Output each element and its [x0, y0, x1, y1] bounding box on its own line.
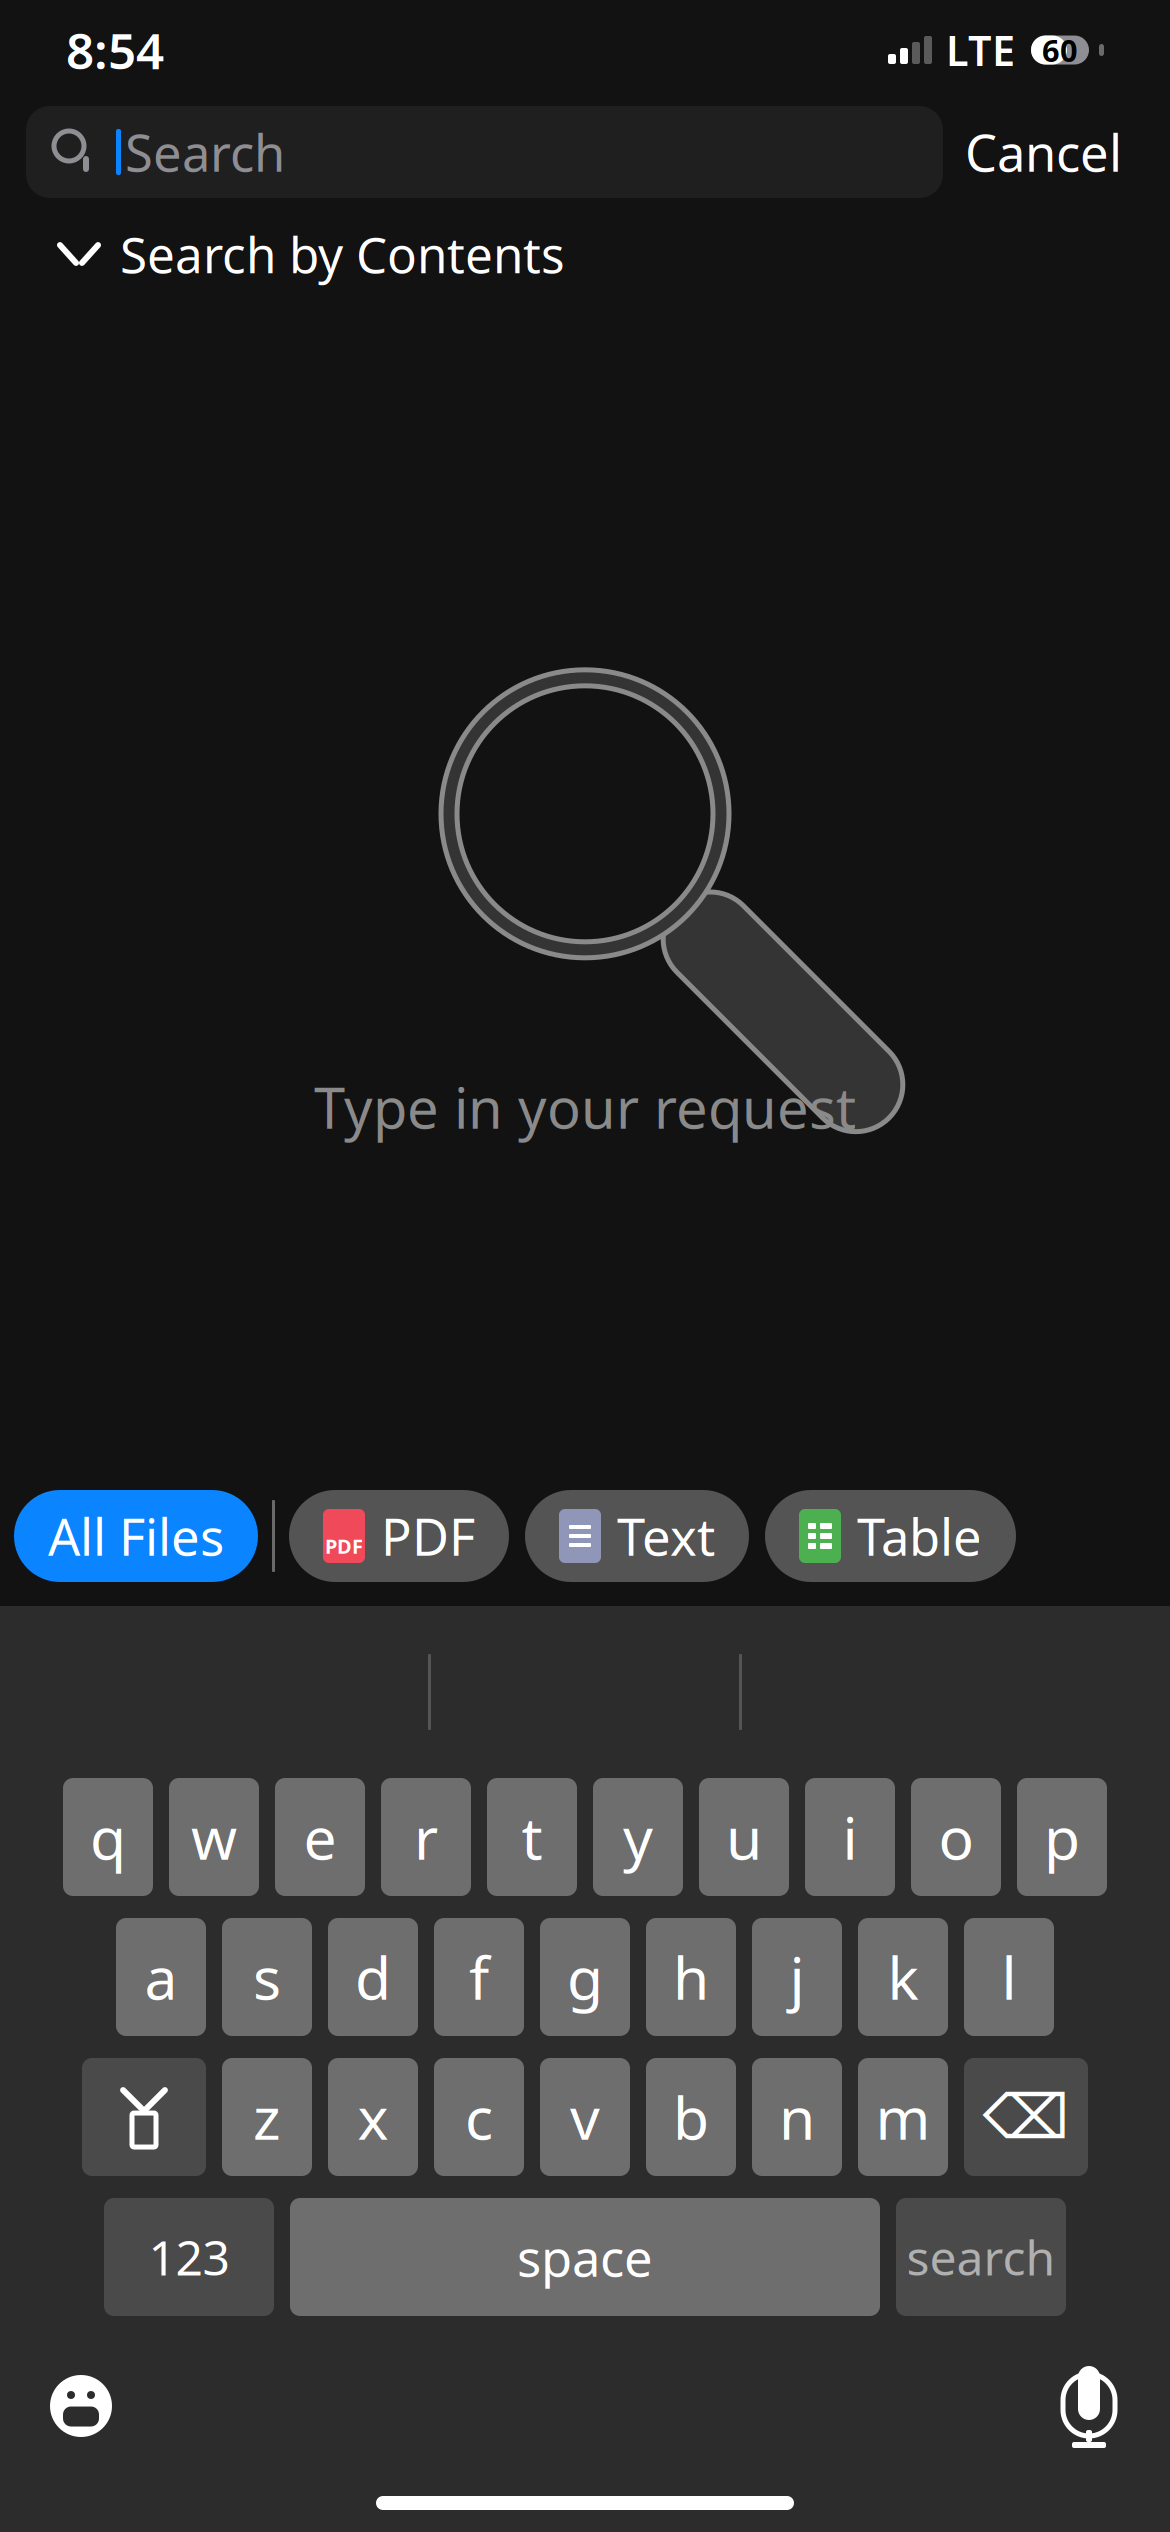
staticText: x — [357, 2078, 388, 2156]
staticText: a — [144, 1938, 177, 2016]
staticText: g — [567, 1938, 603, 2016]
staticText: PDF — [381, 1502, 475, 1570]
staticText: Text — [617, 1502, 715, 1570]
button[interactable]: y — [593, 1778, 683, 1896]
button[interactable]: All Files — [14, 1490, 258, 1582]
staticText: Search by Contents — [120, 221, 565, 287]
staticText: m — [875, 2078, 930, 2156]
button[interactable]: b — [646, 2058, 736, 2176]
staticText: i — [842, 1798, 857, 1876]
staticText: 60 — [1042, 30, 1078, 70]
button[interactable]: q — [63, 1778, 153, 1896]
staticText: Type in your request — [314, 1070, 856, 1144]
button[interactable]: Search by Contents — [0, 216, 1170, 292]
button[interactable]: u — [699, 1778, 789, 1896]
staticText: PDF — [325, 1533, 363, 1559]
button[interactable]: i — [805, 1778, 895, 1896]
button[interactable]: x — [328, 2058, 418, 2176]
staticText: 123 — [148, 2225, 229, 2289]
button[interactable]: space — [290, 2198, 880, 2316]
staticText: n — [779, 2078, 815, 2156]
button[interactable]: f — [434, 1918, 524, 2036]
staticText: 8:54 — [66, 17, 164, 83]
button[interactable]: Dictation — [1044, 2360, 1134, 2452]
staticText: r — [414, 1798, 438, 1876]
button[interactable]: a — [116, 1918, 206, 2036]
button[interactable]: l — [964, 1918, 1054, 2036]
button[interactable]: p — [1017, 1778, 1107, 1896]
staticText: q — [90, 1798, 126, 1876]
staticText: b — [673, 2078, 709, 2156]
staticText: search — [906, 2225, 1055, 2289]
staticText: All Files — [48, 1502, 224, 1570]
button[interactable]: Emoji — [36, 2361, 126, 2451]
staticText: j — [789, 1938, 804, 2016]
button[interactable]: c — [434, 2058, 524, 2176]
staticText: Table — [857, 1502, 982, 1570]
button[interactable]: z — [222, 2058, 312, 2176]
button[interactable]: d — [328, 1918, 418, 2036]
button[interactable]: w — [169, 1778, 259, 1896]
staticText: space — [517, 2223, 653, 2291]
button[interactable]: PDF — [289, 1490, 509, 1582]
button[interactable]: e — [275, 1778, 365, 1896]
button[interactable]: Delete — [964, 2058, 1088, 2176]
button[interactable]: Cancel — [943, 106, 1144, 198]
staticText: v — [570, 2078, 600, 2156]
staticText: LTE — [946, 23, 1015, 77]
staticText: s — [253, 1938, 281, 2016]
staticText: Search — [125, 118, 285, 186]
button[interactable]: Text — [525, 1490, 749, 1582]
button[interactable]: j — [752, 1918, 842, 2036]
staticText: Cancel — [965, 118, 1122, 186]
staticText: t — [521, 1798, 542, 1876]
button[interactable]: m — [858, 2058, 948, 2176]
staticText: ⌫ — [982, 2082, 1069, 2152]
button[interactable]: t — [487, 1778, 577, 1896]
button[interactable]: n — [752, 2058, 842, 2176]
staticText: f — [469, 1938, 489, 2016]
button[interactable]: Table — [765, 1490, 1016, 1582]
staticText: k — [887, 1938, 918, 2016]
button[interactable]: 123 — [104, 2198, 274, 2316]
staticText: d — [355, 1938, 391, 2016]
staticText: u — [726, 1798, 762, 1876]
staticText: w — [191, 1798, 237, 1876]
staticText: o — [938, 1798, 973, 1876]
button[interactable]: h — [646, 1918, 736, 2036]
button[interactable]: Shift — [82, 2058, 206, 2176]
staticText: z — [253, 2078, 281, 2156]
staticText: e — [303, 1798, 336, 1876]
button[interactable]: o — [911, 1778, 1001, 1896]
staticText: p — [1044, 1798, 1080, 1876]
button[interactable]: s — [222, 1918, 312, 2036]
button[interactable]: k — [858, 1918, 948, 2036]
button[interactable]: v — [540, 2058, 630, 2176]
staticText: y — [623, 1798, 653, 1876]
staticText: h — [673, 1938, 709, 2016]
button[interactable]: search — [896, 2198, 1066, 2316]
button[interactable]: r — [381, 1778, 471, 1896]
staticText: l — [1001, 1938, 1016, 2016]
button[interactable]: g — [540, 1918, 630, 2036]
staticText: c — [465, 2078, 493, 2156]
